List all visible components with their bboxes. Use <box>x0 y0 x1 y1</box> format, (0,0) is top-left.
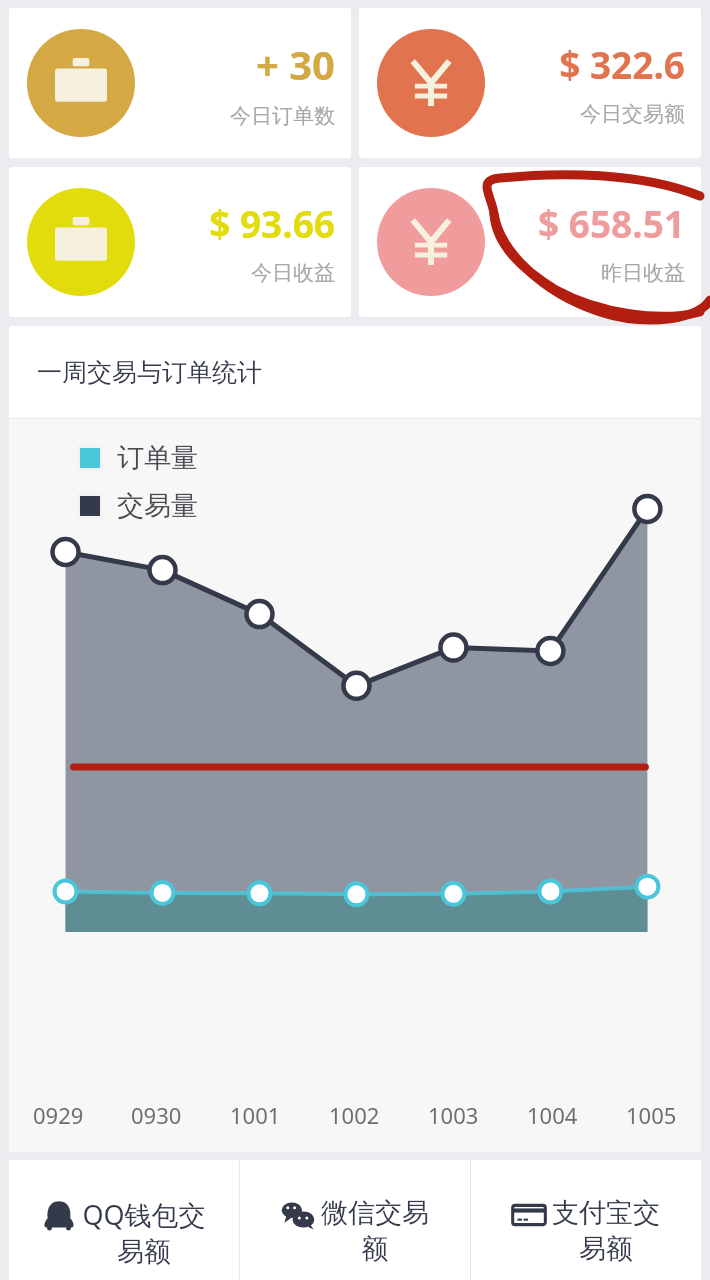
staticText: 交易量 <box>117 489 198 523</box>
staticText: 1004 <box>527 1100 578 1130</box>
button[interactable]: 一周交易与订单统计 <box>9 326 701 418</box>
staticText: QQ钱包交 易额 <box>82 1196 206 1269</box>
staticText: + 30 <box>255 37 335 91</box>
button[interactable]: QQ钱包交 易额 <box>9 1160 239 1280</box>
button[interactable]: 微信交易 额 <box>240 1160 470 1280</box>
button[interactable]: 支付宝交 易额 <box>471 1160 701 1280</box>
button[interactable]: $ 93.66 <box>9 167 351 317</box>
staticText: 一周交易与订单统计 <box>37 357 262 388</box>
button[interactable]: $ 658.51 <box>359 167 701 317</box>
staticText: 0930 <box>131 1100 182 1130</box>
staticText: $ 322.6 <box>559 39 685 89</box>
staticText: 今日订单数 <box>230 103 335 129</box>
staticText: 1002 <box>329 1100 380 1130</box>
staticText: 1005 <box>626 1100 677 1130</box>
staticText: 微信交易 额 <box>321 1196 429 1266</box>
staticText: 今日交易额 <box>580 101 685 127</box>
staticText: 今日收益 <box>251 260 335 286</box>
button[interactable]: + 30 <box>9 8 351 158</box>
staticText: 订单量 <box>117 441 198 475</box>
staticText: 昨日收益 <box>601 260 685 286</box>
other: 微信交易 额 <box>281 1200 315 1230</box>
staticText: 1003 <box>428 1100 479 1130</box>
staticText: $ 93.66 <box>209 198 335 248</box>
staticText: 支付宝交 易额 <box>552 1196 660 1266</box>
other: 支付宝交 易额 <box>512 1200 546 1230</box>
other: QQ钱包交 易额 <box>42 1200 76 1230</box>
staticText: 0929 <box>33 1100 84 1130</box>
staticText: 1001 <box>230 1100 281 1130</box>
staticText: $ 658.51 <box>537 198 685 248</box>
button[interactable]: $ 322.6 <box>359 8 701 158</box>
